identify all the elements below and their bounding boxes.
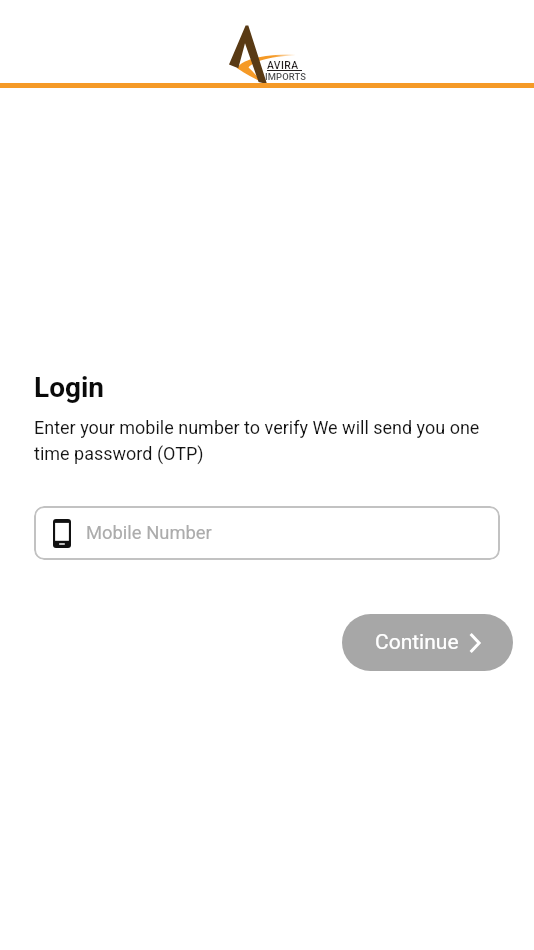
button[interactable]: Continue <box>342 614 513 671</box>
staticText: AVIRA <box>267 59 299 71</box>
button[interactable]: Mobile phone <box>34 506 500 560</box>
other: Mobile phone <box>53 519 71 548</box>
staticText: Mobile Number <box>86 522 212 544</box>
staticText: Login <box>34 371 105 404</box>
staticText: IMPORTS <box>265 71 306 82</box>
staticText: Continue <box>375 630 459 655</box>
staticText: Enter your mobile number to verify We wi… <box>34 417 500 464</box>
